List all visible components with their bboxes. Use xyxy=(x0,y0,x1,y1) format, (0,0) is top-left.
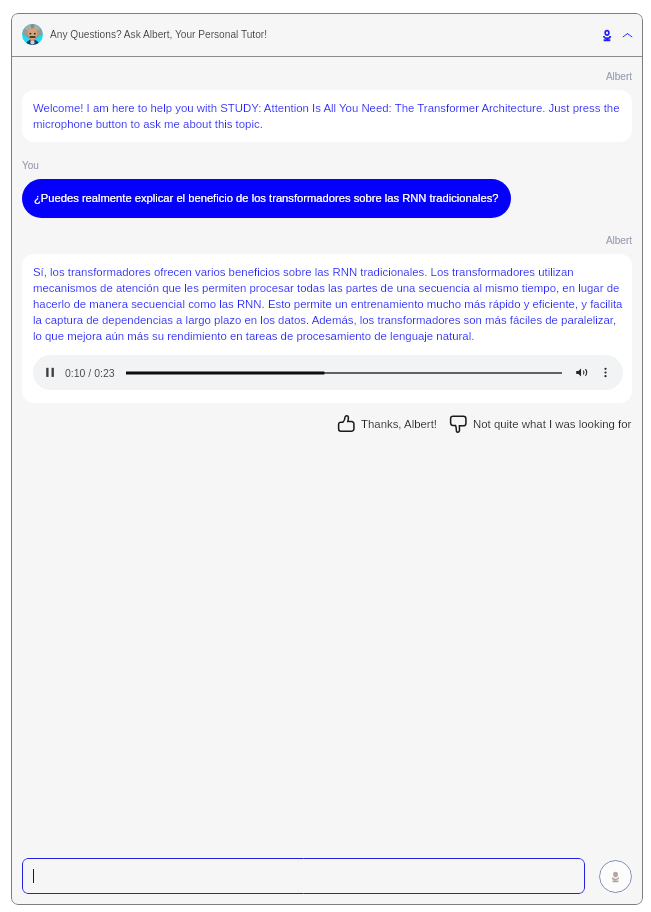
staticText: Any Questions? Ask Albert, Your Personal… xyxy=(50,29,268,40)
button[interactable]: More options xyxy=(599,366,612,379)
staticText: Welcome! I am here to help you with STUD… xyxy=(33,102,621,130)
button[interactable]: Welcome! I am here to help you with STUD… xyxy=(22,90,632,142)
button[interactable]: Sí, los transformadores ofrecen varios b… xyxy=(22,254,632,403)
button[interactable]: Collapse xyxy=(617,25,637,45)
button[interactable]: Pause xyxy=(44,366,57,379)
staticText: Albert xyxy=(22,71,632,82)
staticText: Sí, los transformadores ofrecen varios b… xyxy=(33,266,623,342)
staticText: Albert xyxy=(22,235,632,246)
staticText: Not quite what I was looking for xyxy=(473,418,632,431)
staticText: You xyxy=(22,160,39,171)
staticText: ¿Puedes realmente explicar el beneficio … xyxy=(34,192,499,205)
button[interactable] xyxy=(22,858,585,894)
button[interactable]: Any Questions? Ask Albert, Your Personal… xyxy=(11,13,643,56)
button[interactable]: Thanks, Albert! xyxy=(337,412,437,436)
staticText: Thanks, Albert! xyxy=(361,418,437,431)
button[interactable]: Microphone xyxy=(597,25,617,45)
button[interactable]: Not quite what I was looking for xyxy=(449,412,632,436)
button[interactable]: Volume xyxy=(575,366,588,379)
button[interactable]: ¿Puedes realmente explicar el beneficio … xyxy=(22,179,511,218)
staticText: 0:10 / 0:23 xyxy=(65,367,115,379)
button[interactable]: Voice input xyxy=(599,860,632,893)
